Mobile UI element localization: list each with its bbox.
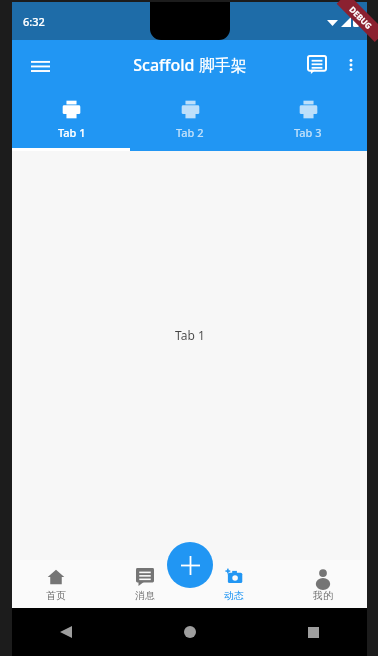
staticText: 动态: [224, 589, 244, 602]
button[interactable]: 首页: [12, 560, 100, 608]
button[interactable]: 我的: [278, 560, 367, 608]
button[interactable]: Home: [176, 618, 204, 646]
staticText: Tab 2: [176, 125, 204, 140]
button[interactable]: Back: [52, 618, 80, 646]
staticText: DEBUG: [347, 4, 375, 31]
button[interactable]: Tab 1: [12, 90, 131, 148]
button[interactable]: More options: [335, 49, 367, 81]
button[interactable]: Open navigation drawer: [22, 47, 58, 83]
staticText: Tab 1: [175, 327, 205, 343]
staticText: 首页: [46, 589, 66, 602]
staticText: 消息: [135, 589, 155, 602]
button[interactable]: Recent apps: [299, 618, 327, 646]
staticText: Scaffold 脚手架: [133, 54, 247, 76]
staticText: Tab 1: [58, 125, 86, 140]
staticText: Tab 3: [294, 125, 322, 140]
button[interactable]: 消息: [100, 560, 189, 608]
button[interactable]: Tab 2: [131, 90, 249, 148]
staticText: 6:32: [23, 14, 45, 29]
button[interactable]: Add: [167, 542, 213, 588]
staticText: 我的: [313, 589, 333, 602]
button[interactable]: Messages: [299, 47, 335, 83]
button[interactable]: 动态: [189, 560, 278, 608]
button[interactable]: Tab 3: [249, 90, 367, 148]
